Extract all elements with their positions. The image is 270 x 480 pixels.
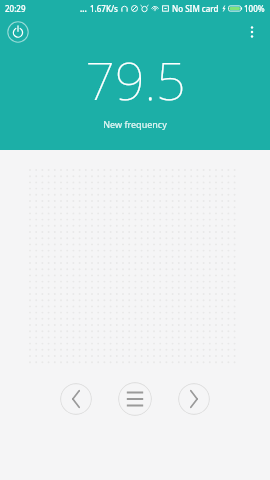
button[interactable]: More options — [238, 18, 266, 46]
staticText: No SIM card — [172, 3, 219, 14]
button[interactable]: Previous — [60, 383, 92, 415]
staticText: New frequency — [103, 118, 167, 130]
staticText: ... — [80, 3, 87, 14]
button[interactable]: List — [118, 382, 152, 416]
button[interactable]: Next — [178, 383, 210, 415]
staticText: 20:29 — [5, 3, 26, 14]
staticText: 1.67K/s — [90, 3, 118, 14]
staticText: 79.5 — [85, 44, 186, 115]
staticText: 100% — [244, 3, 265, 14]
button[interactable]: Power — [6, 20, 30, 44]
